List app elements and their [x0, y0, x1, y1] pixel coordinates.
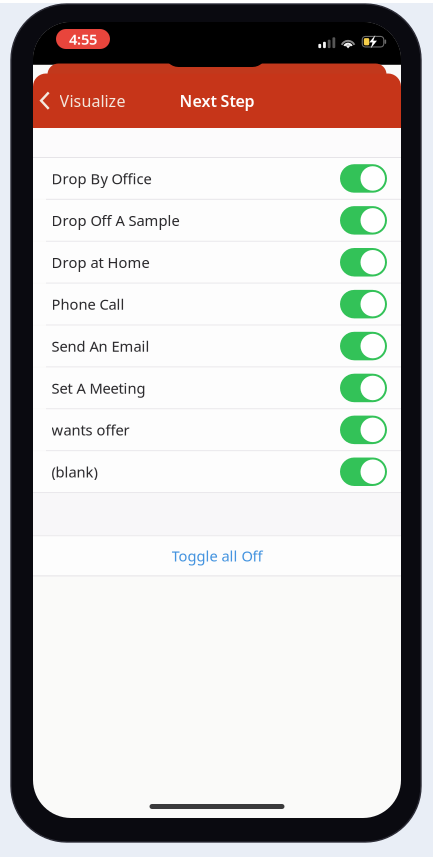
button[interactable]: Drop By Office: [33, 158, 401, 199]
button[interactable]: Visualize: [33, 81, 135, 120]
button[interactable]: Phone Call: [33, 284, 401, 325]
button[interactable]: Send An Email: [33, 326, 401, 366]
staticText: (blank): [51, 462, 97, 481]
staticText: Visualize: [59, 90, 125, 111]
staticText: Drop Off A Sample: [51, 211, 179, 230]
staticText: Send An Email: [51, 336, 149, 356]
staticText: Drop By Office: [51, 169, 151, 188]
button[interactable]: wants offer: [33, 409, 401, 450]
button[interactable]: Toggle all Off: [33, 536, 401, 575]
staticText: 4:55: [69, 29, 97, 49]
staticText: wants offer: [51, 420, 129, 440]
staticText: Drop at Home: [51, 252, 149, 272]
button[interactable]: Drop Off A Sample: [33, 200, 401, 241]
button[interactable]: (blank): [33, 451, 401, 492]
staticText: Toggle all Off: [171, 546, 262, 566]
button[interactable]: Set A Meeting: [33, 367, 401, 408]
staticText: Set A Meeting: [51, 378, 145, 398]
button[interactable]: Drop at Home: [33, 242, 401, 283]
staticText: Phone Call: [51, 294, 124, 314]
staticText: Next Step: [179, 90, 254, 111]
